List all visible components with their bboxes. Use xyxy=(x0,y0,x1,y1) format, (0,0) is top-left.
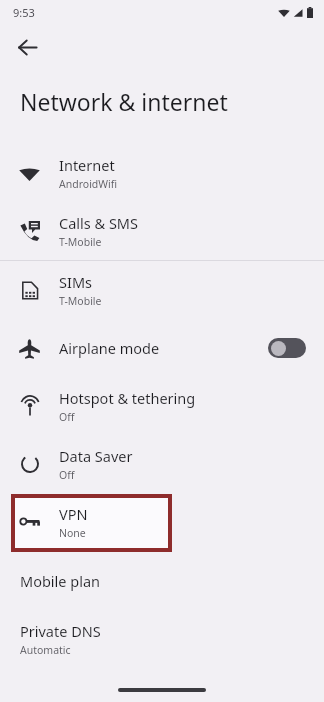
staticText: Off xyxy=(59,410,75,424)
button[interactable]: Private DNS xyxy=(0,610,324,668)
button[interactable]: SIMs xyxy=(0,261,324,319)
staticText: Network & internet xyxy=(20,86,228,117)
staticText: Calls & SMS xyxy=(59,213,138,233)
staticText: Off xyxy=(59,468,75,482)
staticText: T-Mobile xyxy=(59,294,102,308)
staticText: VPN xyxy=(59,504,88,524)
button[interactable]: Data Saver xyxy=(0,435,324,493)
staticText: SIMs xyxy=(59,272,92,292)
button[interactable]: Airplane mode xyxy=(0,319,324,377)
staticText: Airplane mode xyxy=(59,338,160,358)
button[interactable]: Back xyxy=(7,27,47,67)
staticText: Internet xyxy=(59,155,115,175)
staticText: Mobile plan xyxy=(20,571,101,591)
staticText: Hotspot & tethering xyxy=(59,388,196,408)
button[interactable]: Hotspot & tethering xyxy=(0,377,324,435)
staticText: Automatic xyxy=(20,643,71,657)
staticText: 9:53 xyxy=(13,5,35,20)
button[interactable]: Airplane mode toggle xyxy=(268,338,306,358)
staticText: AndroidWifi xyxy=(59,177,118,191)
staticText: T-Mobile xyxy=(59,235,102,249)
staticText: Private DNS xyxy=(20,621,101,641)
staticText: Data Saver xyxy=(59,446,133,466)
button[interactable]: Mobile plan xyxy=(0,552,324,610)
button[interactable]: Internet xyxy=(0,144,324,202)
button[interactable]: VPN xyxy=(0,493,324,551)
staticText: None xyxy=(59,526,86,540)
button[interactable]: Calls & SMS xyxy=(0,202,324,260)
